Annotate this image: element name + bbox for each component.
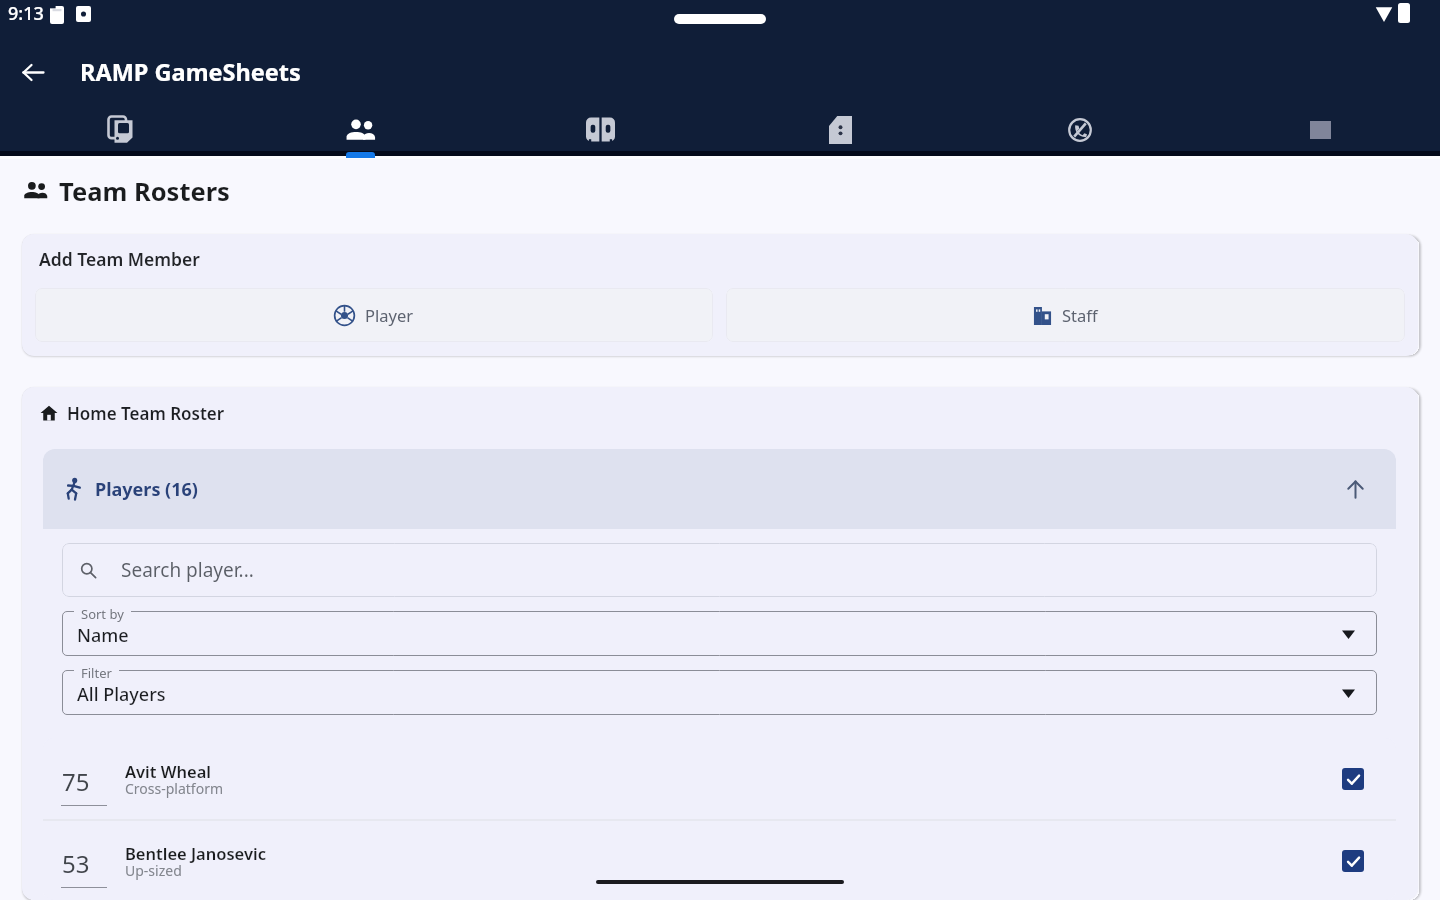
staticText: 53: [62, 847, 90, 880]
button[interactable]: Staff: [726, 288, 1405, 342]
staticText: Player: [365, 304, 414, 326]
staticText: RAMP GameSheets: [80, 56, 301, 88]
button[interactable]: [62, 670, 1377, 715]
staticText: All Players: [77, 682, 166, 707]
button[interactable]: Back: [10, 49, 56, 95]
button[interactable]: Roster: [240, 105, 480, 158]
staticText: Home Team Roster: [67, 402, 225, 425]
staticText: Name: [77, 623, 129, 648]
staticText: Avit Wheal: [125, 760, 211, 782]
staticText: 75: [62, 765, 90, 798]
staticText: 9:13: [8, 1, 44, 26]
button[interactable]: Scoreboard: [480, 105, 720, 158]
button[interactable]: Penalties: [960, 105, 1200, 158]
staticText: Staff: [1062, 304, 1098, 326]
staticText: Players (16): [95, 477, 198, 502]
staticText: Add Team Member: [39, 247, 200, 271]
button[interactable]: Players (16): [43, 449, 1396, 529]
staticText: Filter: [81, 664, 112, 682]
button[interactable]: Player selected: [1342, 768, 1364, 790]
button[interactable]: Search player...: [62, 543, 1377, 597]
button[interactable]: Scoresheet: [0, 105, 240, 158]
button[interactable]: 53: [43, 821, 1396, 900]
button[interactable]: [62, 611, 1377, 656]
button[interactable]: More: [1200, 105, 1440, 158]
button[interactable]: Collapse players list: [1346, 480, 1365, 499]
staticText: Team Rosters: [59, 174, 230, 209]
button[interactable]: Game report: [720, 105, 960, 158]
staticText: Up-sized: [125, 861, 182, 880]
button[interactable]: Player: [35, 288, 713, 342]
staticText: Sort by: [81, 605, 124, 623]
staticText: Cross-platform: [125, 779, 224, 798]
staticText: Search player...: [121, 557, 254, 583]
button[interactable]: Player selected: [1342, 850, 1364, 872]
button[interactable]: 75: [43, 738, 1396, 819]
staticText: Bentlee Janosevic: [125, 842, 266, 864]
